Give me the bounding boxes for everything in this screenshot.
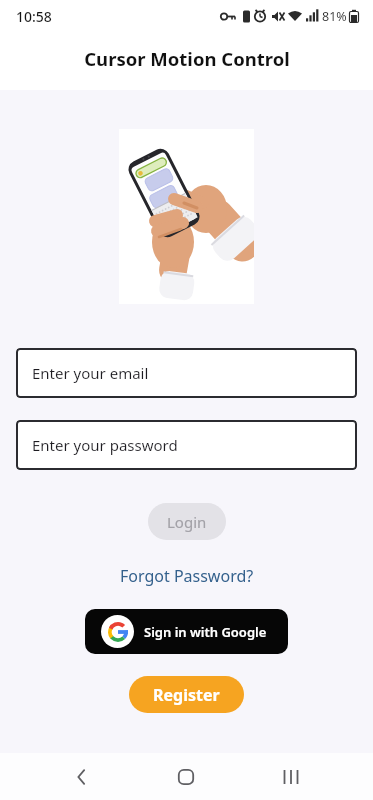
button[interactable]: Forgot Password?: [120, 565, 254, 587]
staticText: Sign in with Google: [144, 623, 267, 641]
button[interactable]: Enter your password: [16, 420, 357, 470]
staticText: Enter your email: [32, 363, 149, 383]
button[interactable]: [154, 753, 218, 800]
button[interactable]: [259, 753, 323, 800]
staticText: Login: [167, 512, 207, 532]
button[interactable]: [50, 753, 114, 800]
staticText: 10:58: [16, 7, 52, 26]
staticText: Forgot Password?: [120, 565, 254, 587]
staticText: 81%: [322, 8, 347, 25]
button[interactable]: Register: [129, 676, 244, 713]
button[interactable]: Enter your email: [16, 348, 357, 398]
staticText: Register: [153, 684, 220, 706]
staticText: Cursor Motion Control: [84, 46, 290, 71]
button[interactable]: Login: [148, 503, 226, 540]
staticText: Enter your password: [32, 435, 178, 455]
button[interactable]: Sign in with Google: [85, 609, 288, 654]
